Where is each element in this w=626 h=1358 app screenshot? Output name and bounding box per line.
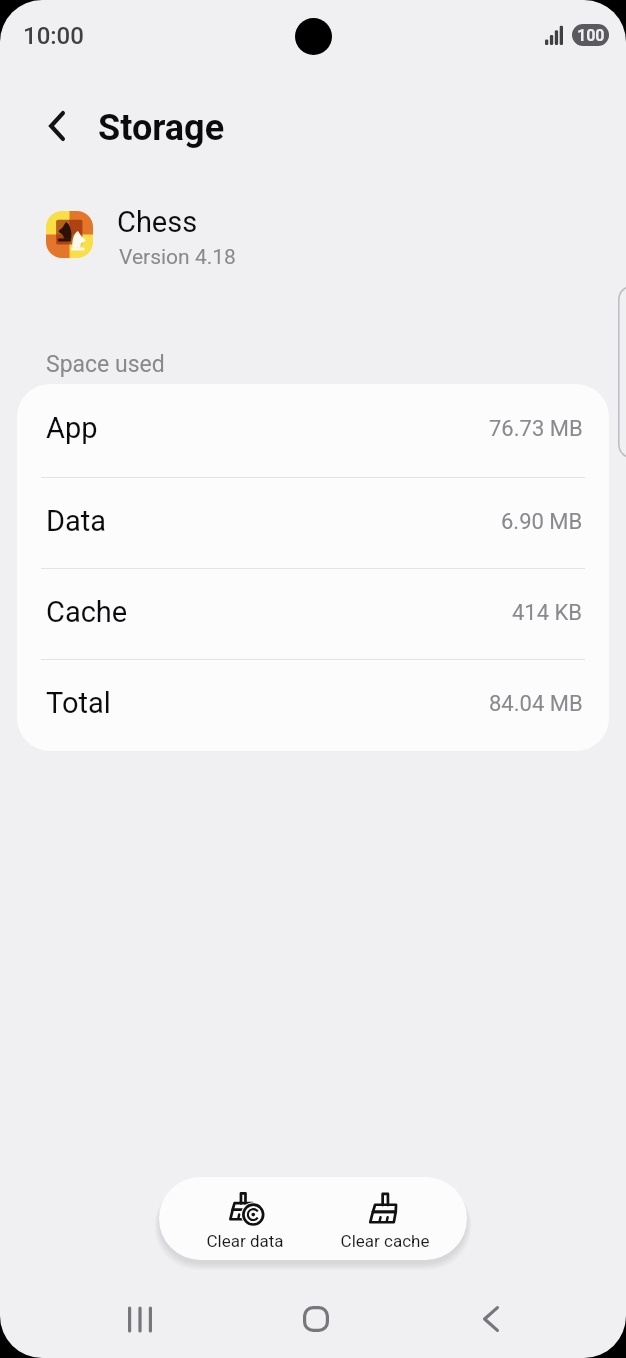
button[interactable]: Data [17,478,609,569]
staticText: Chess [117,205,198,239]
staticText: 84.04 MB [489,691,583,717]
button[interactable]: Recents [110,1289,170,1349]
staticText: 414 KB [512,600,583,626]
staticText: App [46,411,98,445]
button[interactable]: Back [461,1289,521,1349]
staticText: Clear cache [325,1231,445,1251]
staticText: 76.73 MB [489,416,583,442]
staticText: 100 [577,26,605,45]
staticText: 10:00 [23,22,84,50]
staticText: Cache [46,595,128,629]
button[interactable]: Home [286,1289,346,1349]
staticText: Total [46,686,111,720]
staticText: Storage [98,107,225,149]
button[interactable]: Clear data [175,1177,315,1260]
staticText: Version 4.18 [119,245,236,270]
staticText: 6.90 MB [501,509,583,535]
button[interactable]: App [17,384,609,478]
staticText: Clear data [185,1231,305,1251]
button[interactable]: Back [32,101,82,151]
button[interactable]: Cache [17,569,609,660]
button[interactable]: Total [17,660,609,751]
staticText: Data [46,504,107,538]
staticText: Space used [46,351,165,378]
button[interactable]: Clear cache [315,1177,455,1260]
